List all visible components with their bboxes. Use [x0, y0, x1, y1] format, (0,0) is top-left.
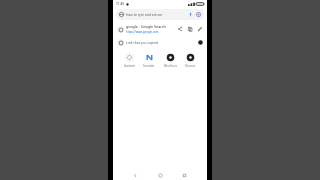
staticText: https://www.google.com — [126, 30, 159, 34]
staticText: Assistant — [124, 64, 135, 68]
staticText: Link that you copied — [126, 40, 198, 45]
button[interactable]: Edit — [197, 26, 203, 32]
button[interactable]: Assistant — [123, 52, 136, 69]
button[interactable]: Home — [158, 173, 163, 178]
staticText: 11:45 — [116, 2, 125, 6]
staticText: Translate — [143, 64, 155, 68]
button[interactable]: google - Google Search — [113, 22, 207, 36]
button[interactable]: More — [198, 40, 203, 45]
staticText: google - Google Search — [126, 24, 166, 29]
button[interactable]: Link that you copied — [113, 37, 207, 48]
staticText: how to tyre and sensor — [126, 12, 186, 17]
button[interactable]: Recents — [182, 173, 187, 178]
button[interactable]: Share — [177, 26, 183, 32]
staticText: Word Lens — [164, 64, 177, 68]
button[interactable]: Discover — [184, 52, 197, 69]
button[interactable]: Translate — [142, 52, 156, 69]
button[interactable]: Back — [133, 173, 138, 178]
button[interactable]: how to tyre and sensor — [116, 9, 204, 20]
staticText: Discover — [185, 64, 196, 68]
button[interactable]: Copy — [187, 26, 193, 32]
button[interactable]: Word Lens — [163, 52, 178, 69]
